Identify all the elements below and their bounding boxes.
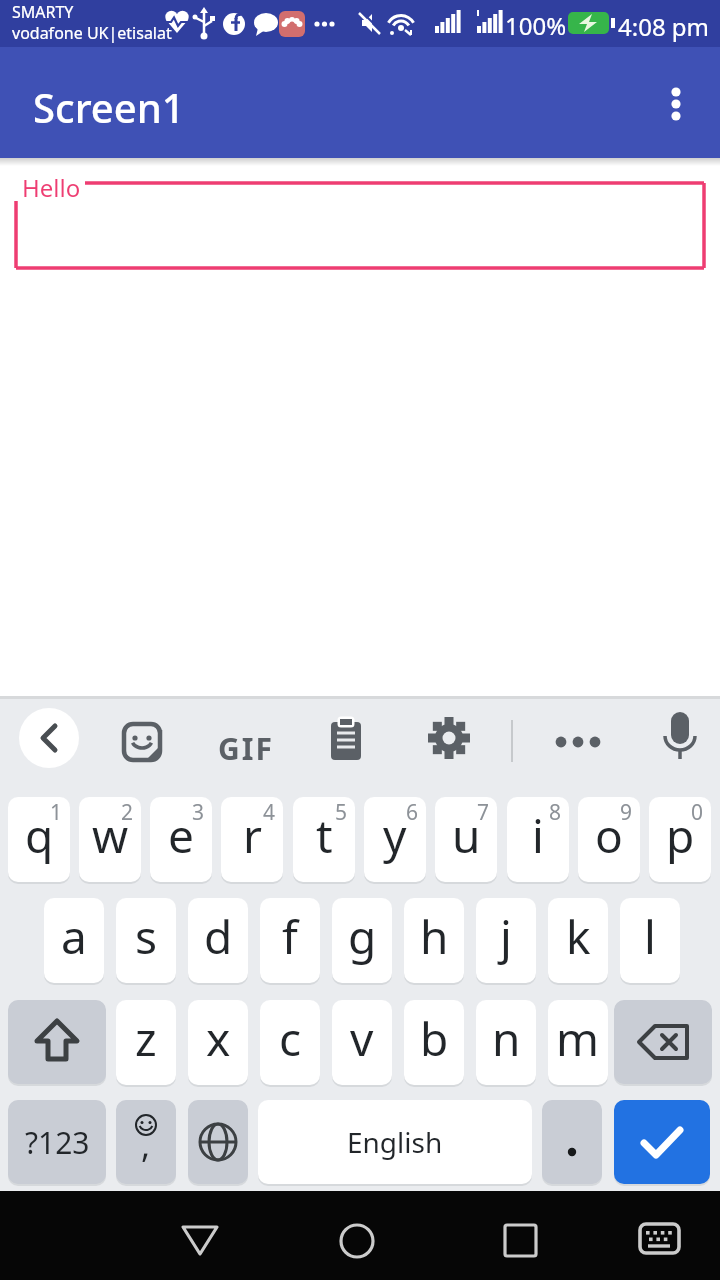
- button[interactable]: f: [260, 898, 320, 983]
- staticText: 1: [50, 798, 63, 827]
- staticText: e: [168, 804, 194, 867]
- button[interactable]: x: [188, 1000, 248, 1085]
- button[interactable]: [327, 718, 367, 764]
- button[interactable]: d: [188, 898, 248, 983]
- button[interactable]: [317, 1201, 397, 1271]
- button[interactable]: z: [116, 1000, 176, 1085]
- button[interactable]: [118, 718, 166, 766]
- button[interactable]: e: [150, 797, 212, 882]
- staticText: w: [92, 804, 129, 867]
- staticText: h: [420, 905, 449, 968]
- button[interactable]: m: [548, 1000, 608, 1085]
- button[interactable]: [19, 708, 79, 768]
- staticText: l: [644, 905, 656, 968]
- staticText: GIF: [218, 728, 274, 769]
- staticText: 2: [121, 798, 134, 827]
- button[interactable]: r: [221, 797, 283, 882]
- button[interactable]: [617, 1201, 697, 1271]
- button[interactable]: [614, 1100, 710, 1184]
- button[interactable]: [427, 716, 471, 760]
- staticText: ,: [141, 1122, 151, 1168]
- staticText: 4: [263, 798, 276, 827]
- staticText: j: [500, 905, 512, 968]
- button[interactable]: w: [79, 797, 141, 882]
- button[interactable]: [480, 1201, 560, 1271]
- staticText: p: [666, 804, 695, 867]
- button[interactable]: h: [404, 898, 464, 983]
- button[interactable]: l: [620, 898, 680, 983]
- button[interactable]: p: [649, 797, 711, 882]
- button[interactable]: [160, 1201, 240, 1271]
- staticText: c: [279, 1007, 302, 1070]
- staticText: n: [492, 1007, 521, 1070]
- button[interactable]: ?123: [8, 1100, 106, 1184]
- staticText: z: [135, 1007, 157, 1070]
- button[interactable]: v: [332, 1000, 392, 1085]
- button[interactable]: [614, 1000, 712, 1084]
- button[interactable]: [188, 1100, 248, 1184]
- staticText: Screen1: [33, 80, 185, 134]
- staticText: f: [282, 905, 298, 968]
- button[interactable]: a: [44, 898, 104, 983]
- staticText: 6: [406, 798, 419, 827]
- button[interactable]: i: [507, 797, 569, 882]
- button[interactable]: o: [578, 797, 640, 882]
- staticText: 7: [477, 798, 490, 827]
- staticText: u: [452, 804, 481, 867]
- button[interactable]: k: [548, 898, 608, 983]
- staticText: g: [348, 905, 377, 968]
- button[interactable]: t: [293, 797, 355, 882]
- button[interactable]: j: [476, 898, 536, 983]
- staticText: m: [556, 1007, 600, 1070]
- button[interactable]: ,: [116, 1100, 176, 1184]
- staticText: s: [135, 905, 158, 968]
- button[interactable]: English: [258, 1100, 532, 1184]
- staticText: Hello: [22, 171, 81, 204]
- staticText: v: [350, 1007, 374, 1070]
- staticText: k: [566, 905, 591, 968]
- staticText: 8: [549, 798, 562, 827]
- staticText: 100%: [505, 9, 567, 42]
- button[interactable]: Hello: [0, 158, 720, 278]
- staticText: r: [243, 804, 262, 867]
- staticText: SMARTY: [12, 1, 74, 23]
- staticText: d: [204, 905, 233, 968]
- staticText: vodafone UK|etisalat: [12, 22, 172, 44]
- button[interactable]: [542, 1100, 602, 1184]
- button[interactable]: c: [260, 1000, 320, 1085]
- staticText: x: [206, 1007, 231, 1070]
- staticText: 0: [691, 798, 704, 827]
- staticText: b: [420, 1007, 449, 1070]
- staticText: q: [25, 804, 54, 867]
- staticText: y: [383, 804, 407, 867]
- button[interactable]: u: [435, 797, 497, 882]
- staticText: ?123: [25, 1122, 90, 1163]
- staticText: English: [347, 1123, 443, 1161]
- button[interactable]: [658, 710, 702, 768]
- button[interactable]: [550, 726, 606, 756]
- button[interactable]: [8, 1000, 106, 1084]
- button[interactable]: s: [116, 898, 176, 983]
- staticText: 5: [335, 798, 348, 827]
- staticText: 4:08 pm: [618, 10, 710, 43]
- staticText: i: [532, 804, 544, 867]
- button[interactable]: n: [476, 1000, 536, 1085]
- staticText: o: [595, 804, 623, 867]
- button[interactable]: [652, 79, 700, 127]
- button[interactable]: q: [8, 797, 70, 882]
- staticText: t: [316, 804, 333, 867]
- button[interactable]: y: [364, 797, 426, 882]
- staticText: 9: [620, 798, 633, 827]
- button[interactable]: g: [332, 898, 392, 983]
- staticText: 3: [192, 798, 205, 827]
- staticText: a: [61, 905, 87, 968]
- button[interactable]: b: [404, 1000, 464, 1085]
